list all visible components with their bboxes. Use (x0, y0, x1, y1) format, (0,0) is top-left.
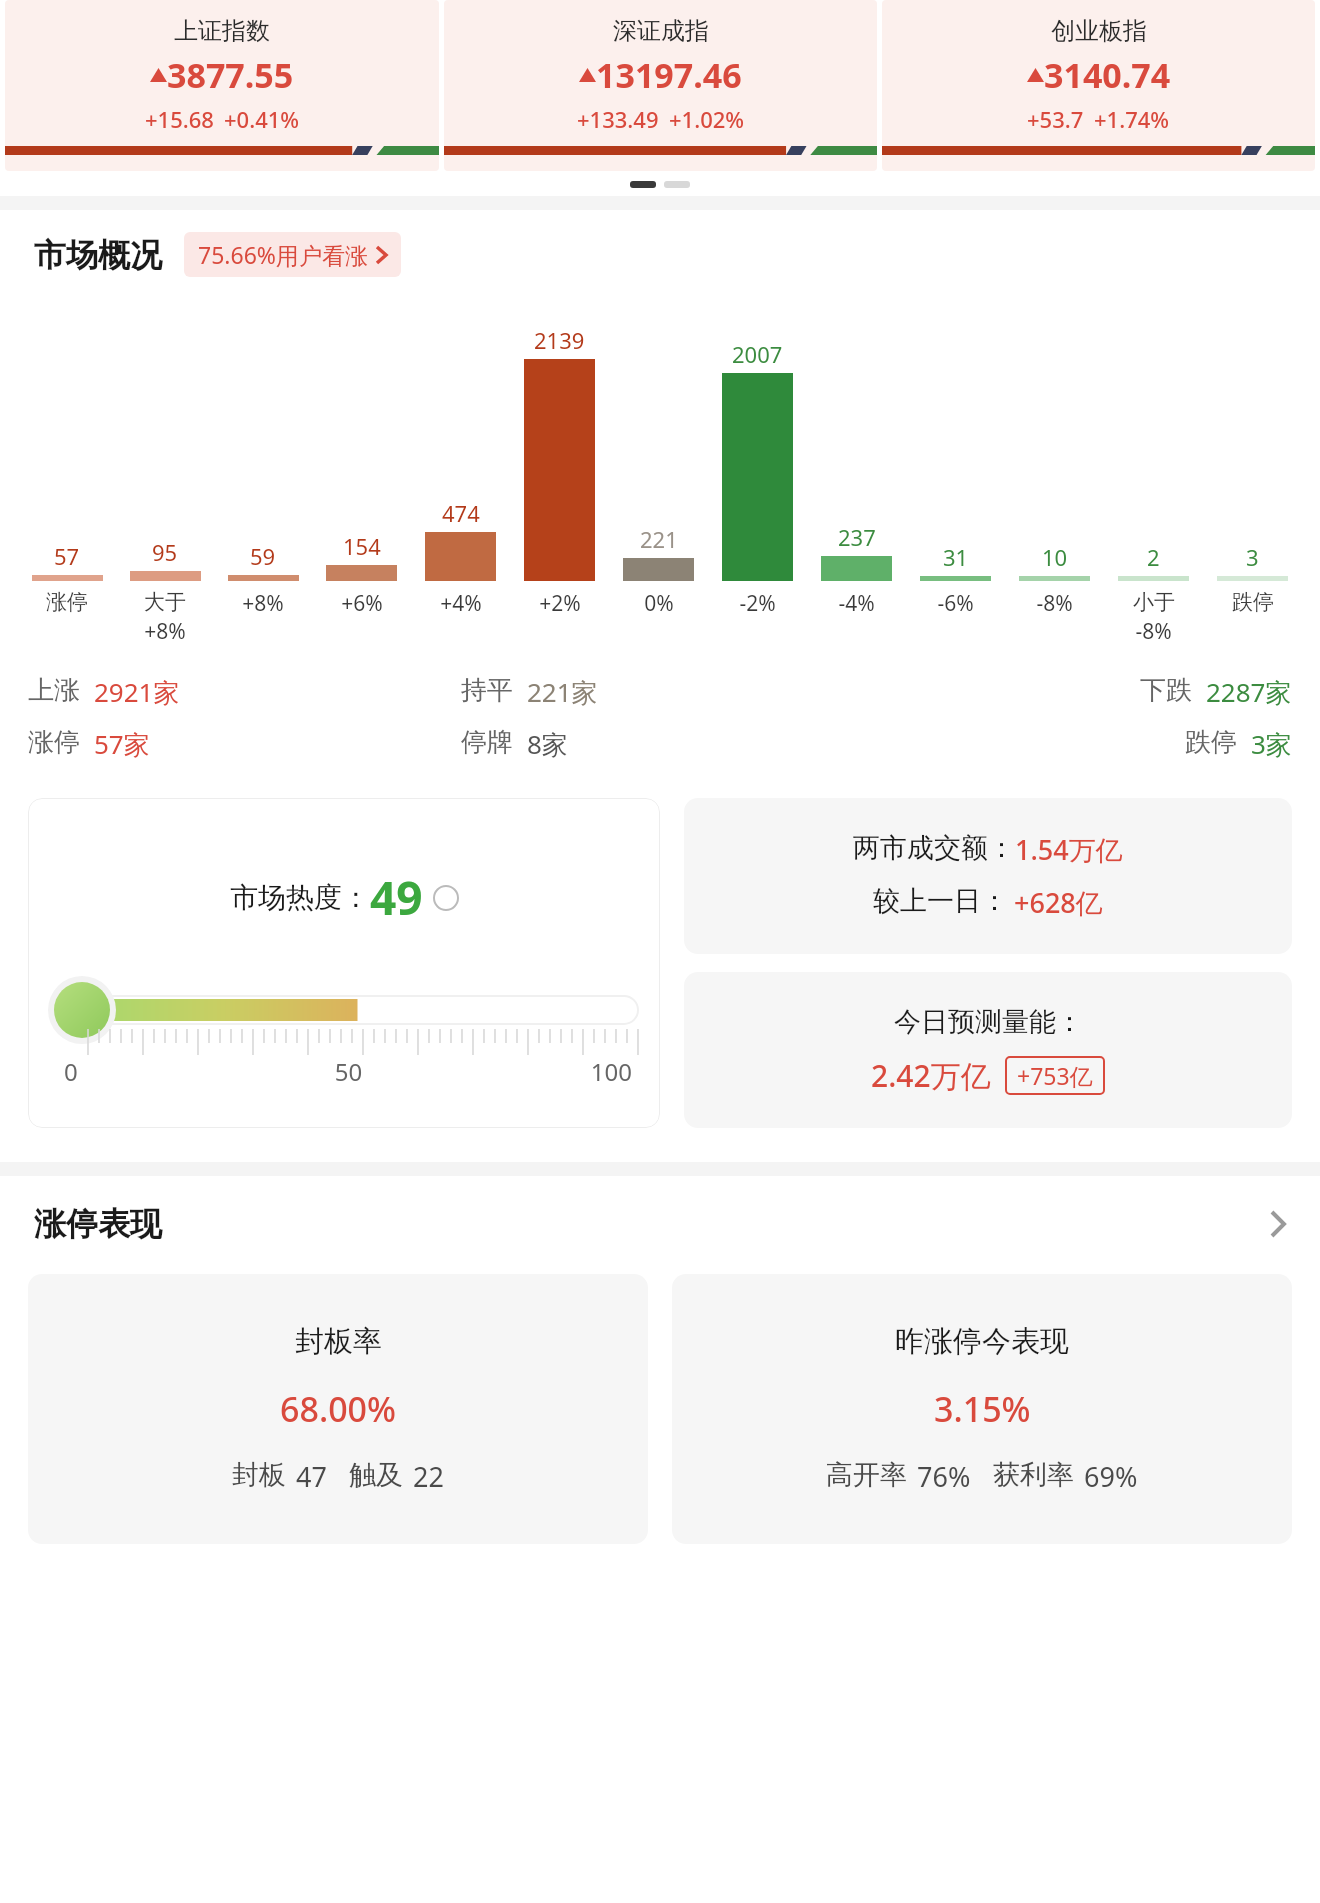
staticText: 涨停 (46, 589, 88, 615)
button[interactable]: 上证指数 (5, 0, 439, 171)
staticText: 昨涨停今表现 (895, 1323, 1069, 1360)
staticText: 2.42万亿 (871, 1055, 991, 1096)
staticText: 68.00% (280, 1386, 397, 1432)
staticText: 57家 (94, 726, 150, 762)
staticText: 3877.55 (167, 52, 294, 98)
staticText: 49 (370, 866, 423, 929)
staticText: 57 (54, 541, 80, 571)
staticText: 2287家 (1206, 674, 1292, 710)
staticText: 跌停 (1232, 589, 1274, 615)
other: 帮助 (433, 885, 459, 911)
staticText: 31 (943, 542, 969, 572)
button[interactable]: 市场热度： (28, 798, 660, 1128)
staticText: 2139 (534, 325, 585, 355)
staticText: 69% (1084, 1458, 1138, 1495)
button[interactable]: 创业板指 (882, 0, 1315, 171)
staticText: 10 (1042, 542, 1068, 572)
staticText: 停牌 (461, 726, 513, 759)
staticText: 8家 (527, 726, 568, 762)
button[interactable]: 涨停表现 (0, 1204, 1320, 1244)
staticText: 237 (838, 522, 876, 552)
staticText: -2% (739, 589, 776, 618)
staticText: +133.49 (577, 104, 659, 134)
staticText: +2% (539, 589, 581, 618)
staticText: -4% (838, 589, 875, 618)
staticText: 2921家 (94, 674, 180, 710)
staticText: 深证成指 (613, 16, 709, 46)
staticText: 小于 (1133, 589, 1175, 615)
staticText: 持平 (461, 674, 513, 707)
staticText: 22 (413, 1458, 444, 1495)
staticText: 75.66%用户看涨 (198, 239, 368, 270)
staticText: 3家 (1251, 726, 1292, 762)
staticText: +1.02% (669, 104, 745, 134)
staticText: +8% (242, 589, 284, 618)
staticText: +1.74% (1094, 104, 1170, 134)
staticText: 创业板指 (1051, 16, 1147, 46)
staticText: 3 (1246, 542, 1259, 572)
staticText: 0 (64, 1055, 254, 1088)
staticText: +15.68 (145, 104, 214, 134)
staticText: 下跌 (1140, 674, 1192, 707)
staticText: +628亿 (1014, 884, 1103, 921)
button[interactable]: 封板率 (28, 1274, 648, 1544)
staticText: 较上一日： (873, 884, 1008, 918)
button[interactable]: 75.66%用户看涨 (184, 232, 401, 277)
staticText: 50 (254, 1055, 443, 1088)
staticText: -8% (1036, 589, 1073, 618)
staticText: 两市成交额： (853, 831, 1015, 865)
staticText: 0% (644, 589, 674, 618)
staticText: 上证指数 (174, 16, 270, 46)
staticText: 市场热度： (230, 880, 370, 915)
staticText: 3.15% (934, 1386, 1031, 1432)
staticText: 76% (917, 1458, 971, 1495)
staticText: 上涨 (28, 674, 80, 707)
button[interactable]: 今日预测量能： (684, 972, 1292, 1128)
staticText: 市场概况 (34, 235, 162, 275)
staticText: 跌停 (1185, 726, 1237, 759)
staticText: 高开率 (826, 1458, 907, 1492)
staticText: 1.54万亿 (1015, 831, 1123, 868)
staticText: +4% (440, 589, 482, 618)
button[interactable]: 深证成指 (444, 0, 877, 171)
staticText: -8% (1135, 617, 1172, 646)
staticText: 涨停表现 (34, 1204, 162, 1244)
staticText: 13197.46 (596, 52, 742, 98)
staticText: 封板 (232, 1458, 286, 1492)
staticText: 95 (152, 537, 178, 567)
staticText: 2007 (732, 339, 783, 369)
staticText: +753亿 (1017, 1060, 1093, 1091)
staticText: 154 (343, 531, 381, 561)
staticText: 获利率 (993, 1458, 1074, 1492)
staticText: +0.41% (224, 104, 300, 134)
staticText: 474 (442, 498, 480, 528)
staticText: 涨停 (28, 726, 80, 759)
staticText: 今日预测量能： (894, 1005, 1083, 1039)
staticText: 59 (250, 541, 276, 571)
button[interactable]: 昨涨停今表现 (672, 1274, 1292, 1544)
staticText: +8% (144, 617, 186, 646)
staticText: 100 (443, 1055, 632, 1088)
staticText: 大于 (144, 589, 186, 615)
staticText: 3140.74 (1044, 52, 1171, 98)
other: 更多 (1270, 1210, 1286, 1238)
staticText: -6% (937, 589, 974, 618)
staticText: 触及 (349, 1458, 403, 1492)
staticText: 221家 (527, 674, 598, 710)
button[interactable]: 两市成交额： (684, 798, 1292, 954)
staticText: 47 (296, 1458, 327, 1495)
staticText: +53.7 (1027, 104, 1084, 134)
staticText: +6% (341, 589, 383, 618)
staticText: 221 (640, 524, 678, 554)
staticText: 2 (1147, 542, 1160, 572)
staticText: 封板率 (295, 1323, 382, 1360)
